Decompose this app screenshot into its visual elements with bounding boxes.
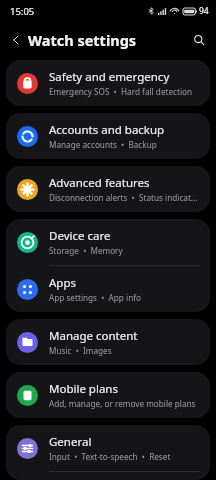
button[interactable]: Accounts and backup (6, 113, 210, 159)
staticText: App settings • App info (49, 292, 141, 303)
button[interactable]: Mobile plans (6, 372, 210, 418)
button[interactable]: Apps (6, 266, 210, 312)
staticText: Music • Images (49, 345, 112, 356)
button[interactable]: General (6, 425, 210, 471)
staticText: Device care (49, 228, 111, 244)
staticText: Apps (49, 275, 77, 291)
button[interactable]: Back (5, 29, 27, 51)
staticText: 15:05 (10, 5, 35, 18)
staticText: Safety and emergency (49, 69, 170, 85)
staticText: Manage accounts • Backup (49, 139, 157, 150)
staticText: Manage content (49, 328, 138, 344)
button[interactable]: Safety and emergency (6, 60, 210, 106)
staticText: General (49, 434, 92, 450)
staticText: Mobile plans (49, 381, 118, 397)
staticText: Advanced features (49, 175, 150, 191)
button[interactable]: Manage content (6, 319, 210, 365)
staticText: Watch settings (28, 30, 137, 50)
staticText: Storage • Memory (49, 245, 123, 256)
staticText: Emergency SOS • Hard fall detection (49, 86, 193, 97)
button[interactable]: Search (188, 29, 210, 51)
staticText: Add, manage, or remove mobile plans (49, 398, 196, 409)
staticText: Input • Text-to-speech • Reset (49, 451, 171, 462)
button[interactable]: Accessibility (6, 472, 210, 480)
staticText: 94 (199, 5, 209, 17)
button[interactable]: Device care (6, 219, 210, 265)
staticText: Disconnection alerts • Status indicators (49, 192, 198, 203)
staticText: Accounts and backup (49, 122, 165, 138)
button[interactable]: Advanced features (6, 166, 210, 212)
